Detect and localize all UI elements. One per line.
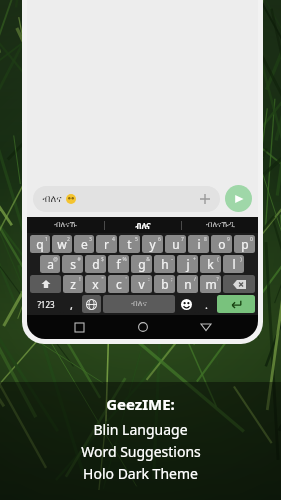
other: Emoji (181, 299, 192, 310)
staticText: i (197, 236, 201, 252)
staticText: p (241, 236, 249, 252)
button[interactable]: p (234, 235, 255, 253)
button[interactable]: o (211, 235, 232, 253)
staticText: ብለና (135, 220, 151, 231)
staticText: @ (53, 256, 58, 263)
other: Change language (86, 299, 97, 310)
staticText: a (47, 256, 54, 272)
button[interactable]: x (85, 275, 106, 293)
staticText: g (138, 256, 146, 272)
staticText: t (127, 236, 132, 252)
staticText: e (81, 236, 88, 252)
button[interactable]: Recents (68, 316, 90, 338)
staticText: m (205, 276, 217, 292)
staticText: & (146, 256, 150, 263)
staticText: ! (79, 276, 81, 283)
staticText: ; (171, 276, 173, 283)
button[interactable]: Attach (199, 193, 211, 205)
button[interactable]: e (74, 235, 94, 253)
button[interactable]: , (63, 295, 80, 313)
button[interactable]: u (165, 235, 186, 253)
button[interactable]: v (131, 275, 152, 293)
button[interactable]: ብለናኹ (27, 217, 104, 233)
staticText: 5 (135, 236, 138, 243)
button[interactable]: m (200, 275, 221, 293)
staticText: y (149, 236, 156, 252)
button[interactable]: y (142, 235, 163, 253)
button[interactable]: w (52, 235, 72, 253)
staticText: GeezIME: (106, 394, 175, 414)
staticText: o (218, 236, 226, 252)
button[interactable]: i (188, 235, 209, 253)
button[interactable]: s (62, 255, 83, 273)
staticText: 9 (227, 236, 230, 243)
staticText: 2 (67, 236, 70, 243)
staticText: u (172, 236, 180, 252)
button[interactable]: . (198, 295, 215, 313)
staticText: - (171, 256, 173, 263)
staticText: Holo Dark Theme (83, 464, 198, 483)
staticText: , (70, 297, 73, 312)
button[interactable]: ?123 (30, 295, 61, 313)
button[interactable]: Enter (217, 295, 255, 313)
staticText: " (101, 276, 104, 283)
other: Shift (41, 279, 51, 289)
staticText: 6 (158, 236, 161, 243)
staticText: 4 (112, 236, 115, 243)
staticText: s (70, 256, 76, 272)
button[interactable]: q (30, 235, 50, 253)
staticText: k (207, 256, 214, 272)
staticText: h (161, 256, 169, 272)
staticText: w (57, 236, 67, 252)
staticText: q (36, 236, 44, 252)
staticText: ብለናኹዲ (206, 221, 235, 229)
staticText: 0 (250, 236, 253, 243)
staticText: l (232, 256, 236, 272)
button[interactable]: n (177, 275, 198, 293)
staticText: j (186, 256, 190, 272)
button[interactable]: d (85, 255, 106, 273)
staticText: . (205, 297, 208, 312)
button[interactable]: f (108, 255, 129, 273)
button[interactable]: ብለና (33, 186, 220, 212)
button[interactable]: ብለናኹዲ (182, 217, 258, 233)
staticText: x (92, 276, 99, 292)
staticText: ' (125, 276, 127, 283)
button[interactable]: Emoji (177, 295, 196, 313)
staticText: f (116, 256, 121, 272)
button[interactable]: t (119, 235, 140, 253)
button[interactable]: k (200, 255, 221, 273)
button[interactable]: r (96, 235, 117, 253)
staticText: ( (217, 256, 219, 263)
button[interactable]: Backspace (223, 275, 255, 293)
button[interactable]: Send (225, 185, 252, 212)
staticText: Word Suggestions (81, 442, 201, 461)
button[interactable]: j (177, 255, 198, 273)
button[interactable]: Change language (82, 295, 101, 313)
staticText: + (193, 256, 196, 263)
staticText: Blin Language (93, 420, 188, 439)
button[interactable]: b (154, 275, 175, 293)
staticText: 7 (181, 236, 184, 243)
staticText: 3 (89, 236, 92, 243)
button[interactable]: ብለና (105, 217, 181, 233)
staticText: ) (240, 256, 242, 263)
staticText: ብለና (42, 194, 62, 204)
staticText: v (138, 276, 145, 292)
button[interactable]: g (131, 255, 152, 273)
button[interactable]: c (108, 275, 129, 293)
button[interactable]: Home (132, 316, 154, 338)
staticText: r (104, 236, 109, 252)
staticText: c (116, 276, 122, 292)
staticText: b (161, 276, 169, 292)
button[interactable]: a (40, 255, 60, 273)
button[interactable]: h (154, 255, 175, 273)
other: Backspace (233, 280, 246, 289)
button[interactable]: z (63, 275, 83, 293)
staticText: / (194, 276, 196, 283)
staticText: ብለና (131, 300, 147, 308)
button[interactable]: l (223, 255, 244, 273)
button[interactable]: Shift (30, 275, 61, 293)
button[interactable]: Back (195, 316, 217, 338)
button[interactable]: ብለና (103, 295, 175, 313)
